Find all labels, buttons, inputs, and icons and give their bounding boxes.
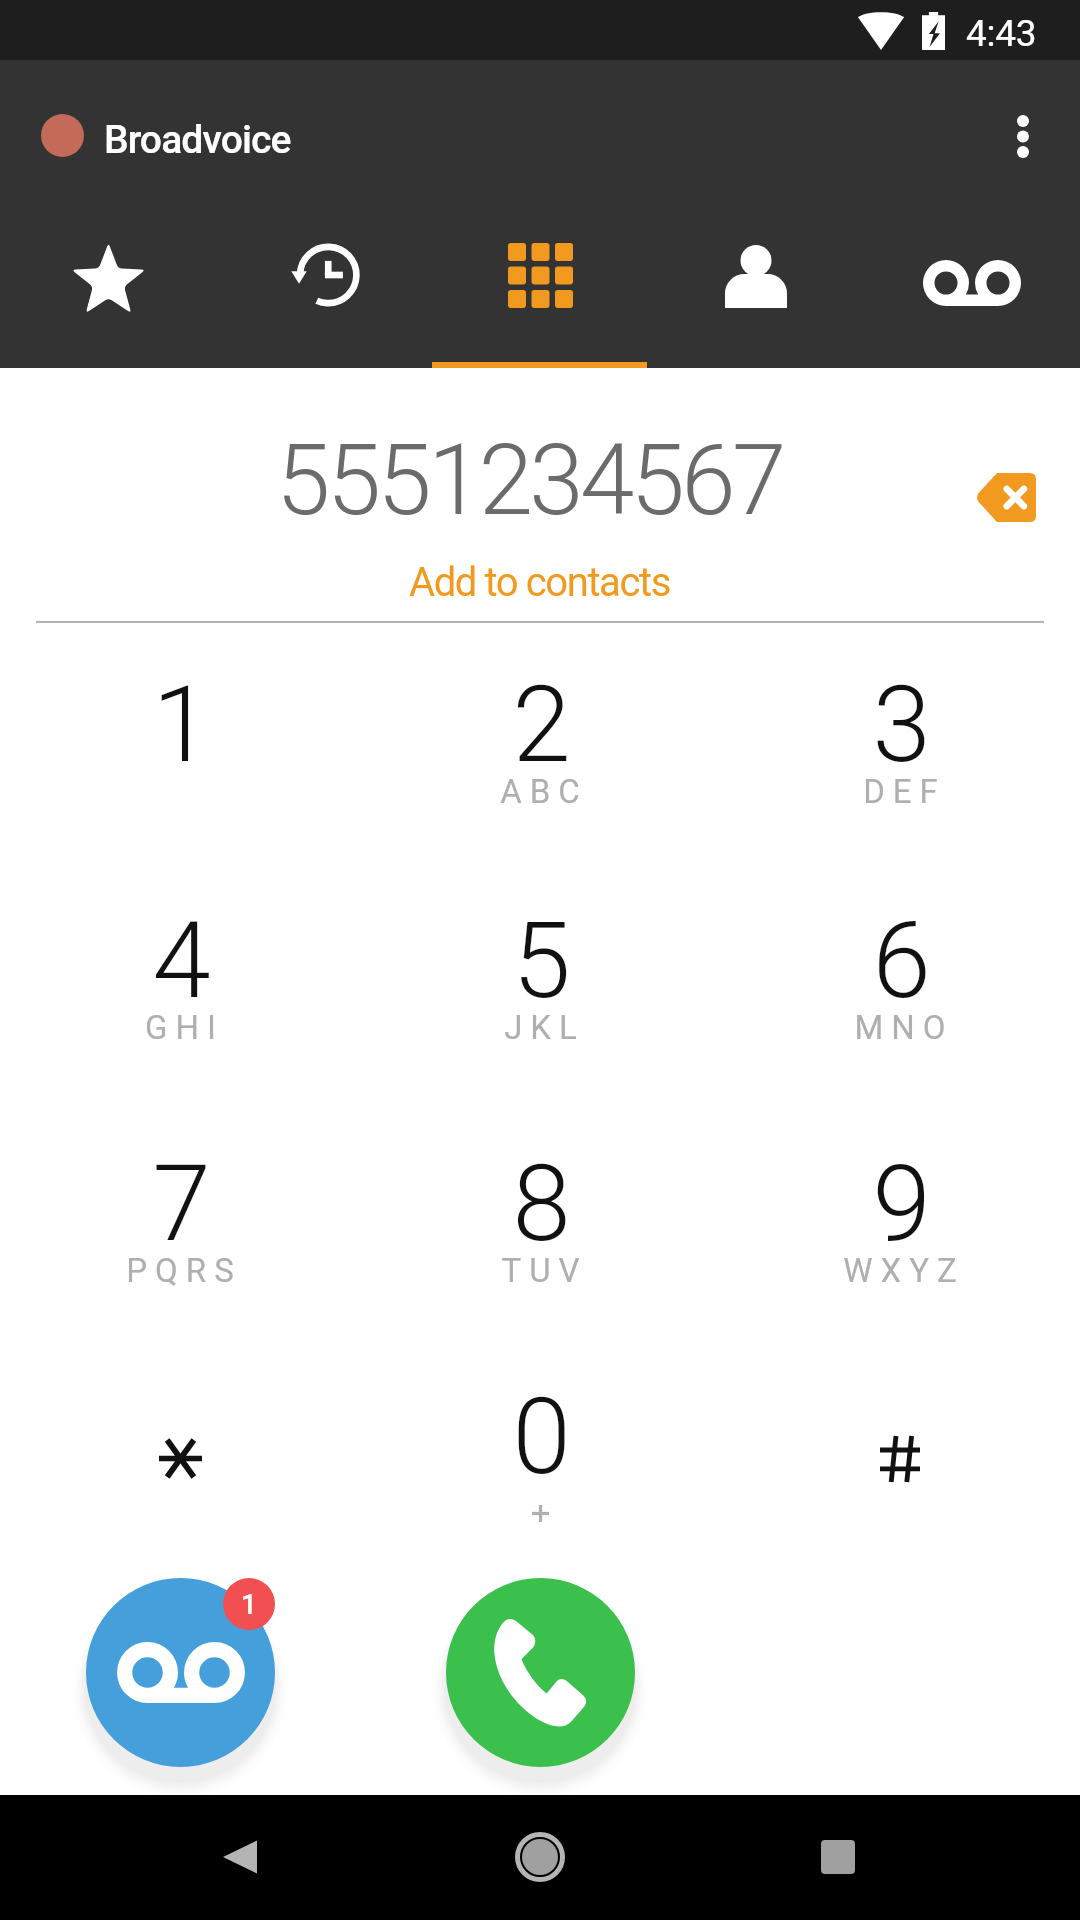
button[interactable]: 7 [0,1110,360,1348]
staticText: DEF [863,772,946,811]
staticText: JKL [504,1008,585,1047]
button[interactable]: 9 [720,1110,1080,1348]
button[interactable]: Voicemail [864,205,1080,368]
button[interactable]: 3 [720,634,1080,872]
button[interactable]: Home [490,1807,590,1907]
button[interactable]: Voicemail [86,1578,275,1767]
button[interactable]: Dialpad [432,205,648,368]
button[interactable]: Back [191,1809,291,1909]
staticText: GHI [145,1008,224,1047]
button[interactable]: Favorites [0,205,216,368]
button[interactable]: 1 [0,634,360,872]
staticText: 2 [512,664,571,787]
button[interactable]: 2 [360,634,720,872]
button[interactable]: More options [975,88,1071,184]
button[interactable]: 5 [360,872,720,1110]
staticText: 5551234567 [276,423,783,538]
staticText: TUV [501,1251,588,1290]
button[interactable]: Add to contacts [370,553,710,609]
staticText: 4 [152,900,211,1023]
button[interactable]: 4 [0,872,360,1110]
button[interactable]: Contacts [648,205,864,368]
staticText: 7 [152,1143,211,1266]
staticText: 1 [241,1588,257,1621]
staticText: 9 [872,1143,931,1266]
staticText: 8 [512,1143,571,1266]
staticText: 5 [512,900,571,1023]
staticText: PQRS [126,1251,242,1290]
button[interactable] [0,1348,360,1586]
staticText: MNO [854,1008,954,1047]
staticText: WXYZ [843,1251,965,1290]
button[interactable]: 6 [720,872,1080,1110]
button[interactable]: 8 [360,1110,720,1348]
button[interactable]: Recents [216,205,432,368]
staticText: 6 [872,900,931,1023]
button[interactable] [720,1348,1080,1586]
staticText: ABC [500,772,588,811]
staticText: Broadvoice [104,117,291,163]
staticText: 0 [512,1376,571,1499]
staticText: 3 [872,664,931,787]
button[interactable]: Call [446,1578,635,1767]
button[interactable]: Backspace [946,437,1066,557]
button[interactable]: 0 [360,1348,720,1586]
staticText: 1 [152,664,211,787]
staticText: 4:43 [966,12,1037,55]
button[interactable]: Recent apps [788,1807,888,1907]
staticText: Add to contacts [409,559,670,606]
